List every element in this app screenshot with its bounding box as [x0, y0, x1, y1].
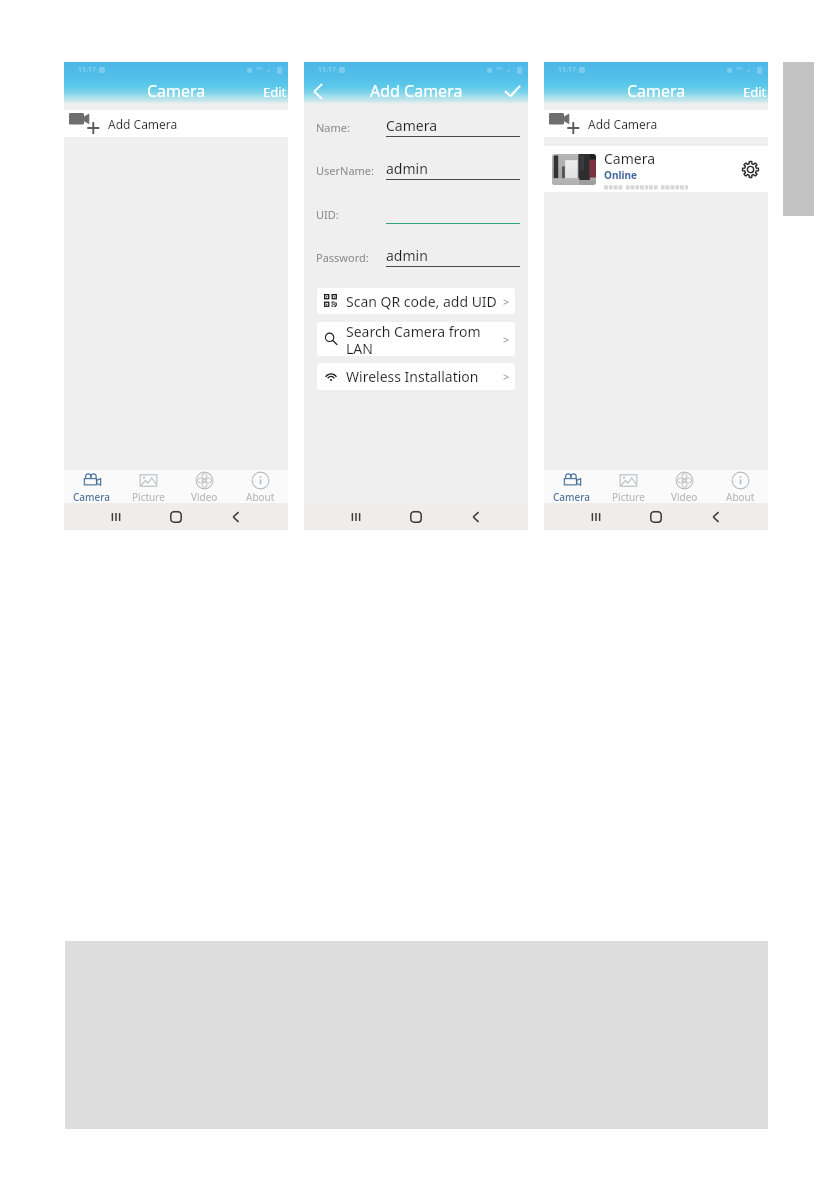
staticText: Video — [671, 490, 698, 503]
staticText: About — [246, 490, 275, 503]
staticText: About — [726, 490, 755, 503]
staticText: Name: — [316, 120, 350, 135]
staticText: 11:17 — [318, 65, 336, 75]
button[interactable]: Scan QR code, add UID — [317, 288, 515, 314]
button[interactable]: Edit — [738, 80, 768, 102]
staticText: Add Camera — [370, 80, 463, 102]
staticText: Password: — [316, 250, 369, 265]
button[interactable]: Search Camera from LAN — [317, 322, 515, 356]
staticText: Camera — [604, 149, 656, 168]
button[interactable]: Add Camera — [64, 110, 288, 137]
button[interactable]: Confirm — [500, 80, 524, 102]
staticText: Camera — [386, 116, 438, 135]
button[interactable]: Back — [228, 510, 244, 524]
button[interactable]: Home — [408, 510, 424, 524]
button[interactable]: Recents — [108, 510, 124, 524]
button[interactable]: About — [712, 470, 768, 503]
button[interactable]: Camera — [64, 470, 120, 503]
staticText: Picture — [132, 490, 165, 503]
button[interactable]: Home — [648, 510, 664, 524]
staticText: admin — [386, 246, 428, 265]
button[interactable]: Picture — [600, 470, 656, 503]
staticText: Add Camera — [588, 116, 658, 132]
staticText: UID: — [316, 207, 339, 222]
staticText: Camera — [73, 490, 111, 503]
staticText: > — [503, 332, 510, 347]
staticText: Search Camera from LAN — [346, 322, 503, 356]
staticText: > — [503, 369, 510, 384]
staticText: UserName: — [316, 163, 375, 178]
button[interactable]: Video — [176, 470, 232, 503]
staticText: admin — [386, 159, 428, 178]
button[interactable]: Home — [168, 510, 184, 524]
button[interactable]: Settings — [737, 156, 763, 182]
button[interactable]: Edit — [258, 80, 288, 102]
button[interactable]: Recents — [588, 510, 604, 524]
button[interactable]: Back — [708, 510, 724, 524]
button[interactable]: Picture — [120, 470, 176, 503]
staticText: Edit — [263, 83, 287, 99]
staticText: Wireless Installation — [346, 367, 503, 386]
button[interactable]: Recents — [348, 510, 364, 524]
button[interactable]: Camera — [544, 146, 768, 192]
staticText: Online — [604, 168, 637, 182]
staticText: > — [503, 294, 510, 309]
staticText: Scan QR code, add UID — [346, 292, 503, 311]
button[interactable]: Add Camera — [544, 110, 768, 137]
staticText: Camera — [553, 490, 591, 503]
button[interactable]: Wireless Installation — [317, 363, 515, 390]
staticText: Camera — [627, 80, 686, 102]
button[interactable]: Back — [468, 510, 484, 524]
button[interactable]: Video — [656, 470, 712, 503]
staticText: Camera — [147, 80, 206, 102]
staticText: 11:17 — [78, 65, 96, 75]
button[interactable]: Camera — [544, 470, 600, 503]
button[interactable]: Back — [307, 80, 329, 102]
staticText: 11:17 — [558, 65, 576, 75]
staticText: Edit — [743, 83, 767, 99]
staticText: Add Camera — [108, 116, 178, 132]
staticText: Video — [191, 490, 218, 503]
button[interactable]: About — [232, 470, 288, 503]
staticText: Picture — [612, 490, 645, 503]
